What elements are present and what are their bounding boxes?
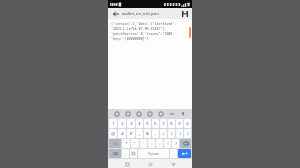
button[interactable]: 6 (152, 119, 159, 128)
staticText: 7 (162, 121, 165, 126)
staticText: 0 (186, 121, 189, 126)
button[interactable]: 7 (160, 119, 167, 128)
button[interactable]: Enter (178, 149, 191, 158)
button[interactable]: & (144, 129, 151, 138)
button[interactable]: ! (164, 139, 171, 148)
button[interactable]: Русский (138, 149, 169, 158)
button[interactable]: " (131, 139, 139, 148)
staticText: =\< (113, 142, 118, 146)
button[interactable]: , (122, 149, 129, 158)
staticText: : (151, 141, 153, 146)
staticText: + (162, 131, 165, 136)
button[interactable]: : (148, 139, 155, 148)
staticText: "keys":[00000000]"} (111, 36, 188, 40)
button[interactable]: + (160, 129, 167, 138)
button[interactable]: Emoji (130, 149, 137, 158)
staticText: # (121, 131, 124, 136)
staticText: {"version":1,"data":{"lastSaved": (111, 21, 188, 25)
staticText: 8 (170, 121, 173, 126)
staticText: ( (171, 131, 173, 136)
staticText: 9 (178, 121, 181, 126)
button[interactable]: Keyboard tool 2 (136, 111, 142, 117)
staticText: _ (139, 131, 141, 136)
button[interactable]: 4 (136, 119, 143, 128)
button[interactable]: * (122, 139, 130, 148)
staticText: 2 (121, 121, 124, 126)
staticText: , (125, 151, 127, 156)
staticText: Русский (148, 152, 159, 156)
button[interactable]: # (118, 129, 126, 138)
staticText: АБВ (113, 152, 118, 156)
button[interactable]: / (184, 129, 191, 138)
staticText: " (134, 141, 136, 146)
staticText: ₽ (130, 131, 133, 136)
staticText: ! (167, 141, 169, 146)
button[interactable]: ? (172, 139, 179, 148)
button[interactable]: Recent apps (123, 160, 131, 168)
staticText: 6 (154, 121, 157, 126)
button[interactable]: 2 (118, 119, 126, 128)
button[interactable]: Keyboard tool 3 (147, 111, 153, 117)
button[interactable]: 9 (176, 119, 183, 128)
staticText: ; (159, 141, 161, 146)
button[interactable]: Save (180, 9, 189, 18)
button[interactable]: ' (140, 139, 147, 148)
staticText: ) (179, 131, 181, 136)
button[interactable]: ) (176, 129, 183, 138)
button[interactable]: Keyboard tool 4 (158, 111, 164, 117)
staticText: / (187, 131, 189, 136)
button[interactable]: Letters (109, 149, 121, 158)
button[interactable]: _ (136, 129, 143, 138)
staticText: 5 (146, 121, 149, 126)
staticText: @ (111, 131, 115, 136)
staticText: . (173, 151, 175, 156)
button[interactable]: {"version":1,"data":{"lastSaved": (108, 19, 192, 109)
staticText: 4 (138, 121, 141, 126)
button[interactable]: Keyboard tool 6 (180, 111, 186, 117)
button[interactable]: @ (109, 129, 117, 138)
button[interactable]: Backspace (180, 139, 191, 148)
button[interactable]: Back (111, 9, 120, 18)
staticText: "2023-1-1e766.07.09:32487"}, (111, 26, 188, 30)
staticText: * (125, 141, 128, 146)
staticText: - (155, 131, 157, 136)
staticText: "patchVersion":0,"issues":"1000. (111, 31, 188, 35)
button[interactable]: Keyboard tool 0 (114, 111, 120, 117)
button[interactable]: Home (146, 160, 154, 168)
button[interactable]: 5 (144, 119, 151, 128)
staticText: ' (143, 141, 144, 146)
button[interactable]: ₽ (127, 129, 135, 138)
button[interactable]: ( (168, 129, 175, 138)
button[interactable]: ; (156, 139, 163, 148)
staticText: & (146, 131, 149, 136)
staticText: wallet_on_net.json (122, 11, 159, 17)
button[interactable]: 8 (168, 119, 175, 128)
button[interactable]: 1 (109, 119, 117, 128)
button[interactable]: Symbols (109, 139, 121, 148)
staticText: ? (175, 141, 177, 146)
button[interactable]: . (170, 149, 177, 158)
button[interactable]: - (152, 129, 159, 138)
staticText: 3 (130, 121, 133, 126)
button[interactable]: Keyboard tool 1 (125, 111, 131, 117)
button[interactable]: Keyboard tool 5 (169, 111, 175, 117)
button[interactable]: 0 (184, 119, 191, 128)
button[interactable]: Back (169, 160, 177, 168)
staticText: 1 (112, 121, 115, 126)
button[interactable]: 3 (127, 119, 135, 128)
